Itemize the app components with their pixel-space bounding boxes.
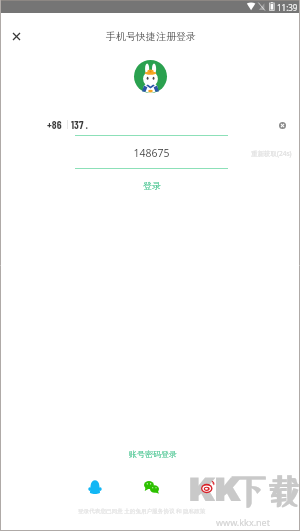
- button[interactable]: Login with QQ: [85, 477, 105, 497]
- button[interactable]: Login with WeChat: [141, 477, 161, 497]
- staticText: 载: [265, 473, 300, 509]
- staticText: www.kkx.net: [216, 516, 270, 528]
- staticText: +86: [47, 118, 62, 131]
- staticText: 11:39: [277, 2, 298, 13]
- button[interactable]: Login with Weibo: [198, 477, 218, 497]
- button[interactable]: 账号密码登录: [3, 449, 300, 459]
- button[interactable]: Clear phone number: [277, 120, 288, 131]
- button[interactable]: Close: [6, 26, 27, 47]
- staticText: 下: [228, 473, 268, 512]
- button[interactable]: 重新获取(24s): [251, 149, 292, 158]
- staticText: KK: [188, 474, 240, 508]
- staticText: 148675: [75, 146, 228, 160]
- staticText: 137 .: [71, 118, 89, 131]
- button[interactable]: 登录: [2, 180, 300, 191]
- staticText: 登录代表您已同意 土的兔用户服务协议 和 隐私政策: [78, 507, 206, 515]
- staticText: 手机号快捷注册登录: [1, 30, 300, 43]
